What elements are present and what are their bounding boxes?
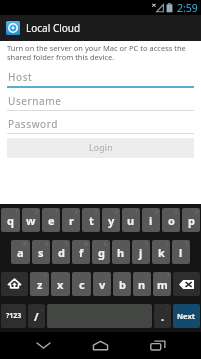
button[interactable]: x [51,272,70,296]
button[interactable]: c [72,272,91,296]
button[interactable]: p [182,208,200,232]
button[interactable]: d [52,240,70,264]
staticText: % [84,241,88,247]
staticText: Username [8,94,62,108]
staticText: # [45,241,48,247]
staticText: o [168,213,175,228]
staticText: Host [8,70,33,84]
button[interactable]: . [154,304,171,328]
staticText: 2 [35,209,38,215]
button[interactable]: s [32,240,50,264]
staticText: c [79,277,85,292]
staticText: e [48,213,55,228]
staticText: a [17,245,24,260]
staticText: g [98,245,105,260]
button[interactable]: Recents [129,332,186,359]
button[interactable]: m [153,272,171,296]
button[interactable]: Login [7,138,194,158]
button[interactable]: Backspace [173,272,200,296]
staticText: " [66,273,68,279]
button[interactable]: a [11,240,30,264]
staticText: & [104,241,108,247]
button[interactable]: b [113,272,131,296]
button[interactable]: i [142,208,160,232]
button[interactable]: Next [173,304,200,328]
staticText: w [26,213,36,228]
staticText: d [58,245,65,260]
staticText: f [79,245,84,260]
staticText: 7 [135,209,138,215]
staticText: 4 [75,209,78,215]
staticText: t [89,213,94,228]
staticText: * [44,273,47,279]
staticText: ?123 [6,311,22,321]
button[interactable]: w [22,208,40,232]
button[interactable]: r [62,208,80,232]
staticText: ; [127,273,129,279]
button[interactable]: Shift [1,272,28,296]
staticText: . [161,309,165,324]
staticText: k [158,245,165,260]
staticText: + [145,241,148,247]
button[interactable]: y [102,208,120,232]
staticText: 1 [15,209,18,215]
button[interactable]: t [82,208,100,232]
staticText: b [119,277,126,292]
staticText: s [38,245,44,260]
staticText: $ [65,241,68,247]
staticText: 9 [175,209,178,215]
staticText: ( [166,241,168,247]
staticText: Turn on the server on your Mac or PC to … [7,43,194,63]
staticText: z [37,277,43,292]
button[interactable]: u [122,208,140,232]
button[interactable]: h [112,240,130,264]
button[interactable]: Password [7,112,194,135]
staticText: ? [167,273,169,279]
button[interactable]: z [30,272,49,296]
button[interactable]: Hide keyboard [15,332,72,359]
button[interactable]: Host [7,65,194,89]
staticText: j [139,245,143,260]
button[interactable]: g [92,240,110,264]
staticText: ! [147,273,149,279]
staticText: x [57,277,64,292]
staticText: Next [177,311,196,321]
staticText: 8 [155,209,158,215]
staticText: i [149,213,153,228]
staticText: / [34,309,39,324]
button[interactable]: n [133,272,151,296]
button[interactable]: j [132,240,150,264]
staticText: m [157,277,168,292]
button[interactable]: e [42,208,60,232]
button[interactable]: f [72,240,90,264]
button[interactable]: ?123 [1,304,26,328]
button[interactable]: / [28,304,45,328]
button[interactable]: l [172,240,190,264]
staticText: 5 [95,209,98,215]
staticText: n [138,277,146,292]
button[interactable]: Username [7,89,194,112]
staticText: l [179,245,183,260]
staticText: 2:59 [177,1,198,15]
button[interactable]: o [162,208,180,232]
staticText: h [117,245,125,260]
button[interactable]: k [152,240,170,264]
staticText: ) [186,241,188,247]
staticText: 6 [115,209,118,215]
staticText: q [7,213,14,228]
button[interactable]: v [93,272,111,296]
staticText: y [108,213,115,228]
staticText: _ [41,305,43,311]
button[interactable]: Home [72,332,129,359]
staticText: : [107,273,109,279]
staticText: Login [89,142,113,154]
staticText: 0 [195,209,198,215]
button[interactable]: q [1,208,20,232]
staticText: Local Cloud [26,21,81,35]
staticText: u [127,213,135,228]
staticText: @ [23,241,28,247]
staticText: , [167,305,169,311]
